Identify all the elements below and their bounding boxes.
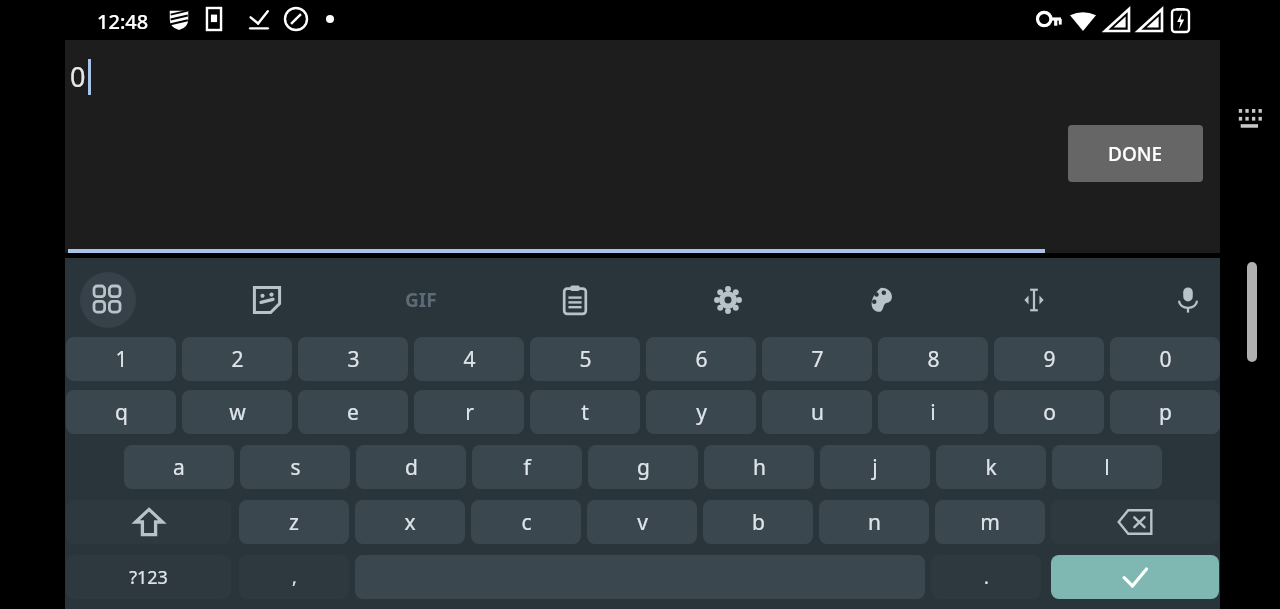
button[interactable]: . <box>931 555 1041 599</box>
staticText: 1 <box>115 345 128 374</box>
button[interactable]: j <box>820 445 930 489</box>
staticText: 0 <box>1159 345 1172 374</box>
staticText: 3 <box>347 345 360 374</box>
staticText: c <box>521 508 532 537</box>
button[interactable]: z <box>239 500 349 544</box>
staticText: 0 <box>70 58 86 95</box>
staticText: u <box>811 398 824 427</box>
button[interactable]: w <box>182 390 292 434</box>
staticText: h <box>753 453 766 482</box>
button[interactable]: Clipboard <box>553 278 597 322</box>
staticText: w <box>229 398 246 427</box>
staticText: v <box>637 508 648 537</box>
staticText: p <box>1159 398 1172 427</box>
button[interactable]: Shift <box>66 500 231 544</box>
staticText: j <box>872 453 878 482</box>
button[interactable]: y <box>646 390 756 434</box>
staticText: d <box>405 453 418 482</box>
button[interactable]: Text editing <box>1012 278 1056 322</box>
button[interactable]: f <box>472 445 582 489</box>
staticText: m <box>980 508 1000 537</box>
staticText: r <box>465 398 474 427</box>
staticText: 2 <box>231 345 244 374</box>
staticText: z <box>289 508 299 537</box>
staticText: a <box>173 453 185 482</box>
button[interactable]: d <box>356 445 466 489</box>
staticText: x <box>404 508 416 537</box>
staticText: b <box>752 508 765 537</box>
staticText: 12:48 <box>97 8 149 35</box>
staticText: 5 <box>579 345 592 374</box>
button[interactable]: Apps <box>80 272 136 328</box>
button[interactable]: Keyboard <box>1238 108 1266 132</box>
button[interactable]: ?123 <box>66 555 231 599</box>
staticText: k <box>985 453 997 482</box>
staticText: l <box>1104 453 1110 482</box>
button[interactable]: 6 <box>646 337 756 381</box>
button[interactable]: Stickers <box>245 278 289 322</box>
button[interactable]: h <box>704 445 814 489</box>
button[interactable]: v <box>587 500 697 544</box>
button[interactable]: l <box>1052 445 1162 489</box>
staticText: s <box>290 453 301 482</box>
button[interactable]: 0 <box>1110 337 1220 381</box>
button[interactable]: Backspace <box>1051 500 1219 544</box>
staticText: 6 <box>695 345 708 374</box>
staticText: 8 <box>927 345 940 374</box>
button[interactable]: o <box>994 390 1104 434</box>
button[interactable]: r <box>414 390 524 434</box>
button[interactable]: 1 <box>66 337 176 381</box>
staticText: , <box>292 565 297 590</box>
staticText: t <box>581 398 589 427</box>
button[interactable]: Themes <box>859 278 903 322</box>
button[interactable]: g <box>588 445 698 489</box>
staticText: o <box>1043 398 1056 427</box>
button[interactable]: n <box>819 500 929 544</box>
button[interactable]: Settings <box>706 278 750 322</box>
staticText: y <box>696 398 707 427</box>
staticText: GIF <box>405 287 437 313</box>
staticText: e <box>347 398 359 427</box>
button[interactable]: Voice input <box>1166 278 1210 322</box>
button[interactable]: 9 <box>994 337 1104 381</box>
button[interactable]: DONE <box>1068 125 1203 182</box>
button[interactable]: a <box>124 445 234 489</box>
button[interactable]: t <box>530 390 640 434</box>
staticText: f <box>523 453 531 482</box>
button[interactable]: 5 <box>530 337 640 381</box>
staticText: DONE <box>1108 141 1163 167</box>
button[interactable]: 8 <box>878 337 988 381</box>
button[interactable]: GIF <box>399 278 443 322</box>
button[interactable]: 4 <box>414 337 524 381</box>
button[interactable]: 2 <box>182 337 292 381</box>
button[interactable]: e <box>298 390 408 434</box>
button[interactable]: k <box>936 445 1046 489</box>
staticText: 4 <box>463 345 476 374</box>
staticText: n <box>868 508 881 537</box>
button[interactable]: b <box>703 500 813 544</box>
button[interactable]: i <box>878 390 988 434</box>
button[interactable]: u <box>762 390 872 434</box>
button[interactable]: q <box>66 390 176 434</box>
button[interactable]: s <box>240 445 350 489</box>
staticText: 7 <box>811 345 824 374</box>
button[interactable]: x <box>355 500 465 544</box>
staticText: q <box>115 398 128 427</box>
button[interactable]: p <box>1110 390 1220 434</box>
staticText: g <box>637 453 650 482</box>
button[interactable]: c <box>471 500 581 544</box>
staticText: i <box>930 398 936 427</box>
staticText: . <box>984 565 989 590</box>
staticText: 9 <box>1043 345 1056 374</box>
button[interactable]: 3 <box>298 337 408 381</box>
button[interactable]: , <box>239 555 349 599</box>
staticText: ?123 <box>129 565 168 590</box>
button[interactable]: 7 <box>762 337 872 381</box>
button[interactable]: m <box>935 500 1045 544</box>
button[interactable]: Enter <box>1051 555 1219 599</box>
